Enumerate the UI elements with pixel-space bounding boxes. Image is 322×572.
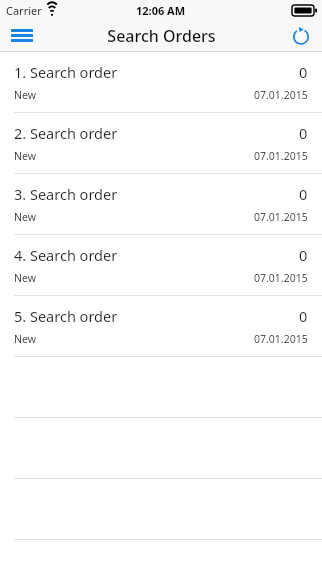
staticText: 1. Search order: [14, 62, 118, 82]
staticText: 5. Search order: [14, 306, 118, 326]
staticText: 0: [299, 123, 308, 143]
staticText: 2. Search order: [14, 123, 118, 143]
staticText: 4. Search order: [14, 245, 118, 265]
staticText: New: [14, 149, 36, 163]
button[interactable]: 5. Search order: [0, 296, 322, 357]
staticText: 07.01.2015: [254, 271, 308, 285]
staticText: 07.01.2015: [254, 332, 308, 346]
staticText: New: [14, 332, 36, 346]
button[interactable]: 2. Search order: [0, 113, 322, 174]
staticText: 0: [299, 184, 308, 204]
staticText: Carrier: [6, 3, 42, 18]
staticText: 0: [299, 245, 308, 265]
staticText: Search Orders: [107, 25, 216, 47]
button[interactable]: 3. Search order: [0, 174, 322, 235]
button[interactable]: Menu: [0, 20, 44, 51]
staticText: 07.01.2015: [254, 88, 308, 102]
staticText: 3. Search order: [14, 184, 118, 204]
staticText: 12:06 AM: [136, 3, 186, 18]
staticText: 07.01.2015: [254, 210, 308, 224]
staticText: New: [14, 88, 36, 102]
button[interactable]: Refresh: [280, 20, 322, 51]
staticText: 0: [299, 306, 308, 326]
staticText: 07.01.2015: [254, 149, 308, 163]
button[interactable]: 4. Search order: [0, 235, 322, 296]
staticText: New: [14, 271, 36, 285]
button[interactable]: 1. Search order: [0, 52, 322, 113]
staticText: New: [14, 210, 36, 224]
staticText: 0: [299, 62, 308, 82]
